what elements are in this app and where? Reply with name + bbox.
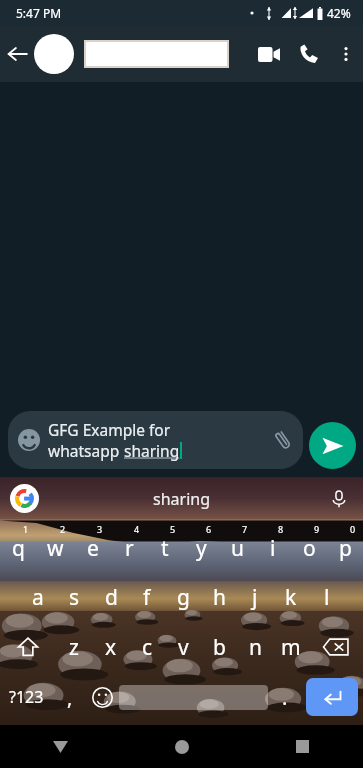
button[interactable]: h	[201, 572, 237, 622]
button[interactable]: 0	[327, 520, 363, 572]
staticText: o	[303, 534, 316, 563]
button[interactable]: j	[237, 572, 273, 622]
button[interactable]: ,	[53, 672, 86, 722]
staticText: j	[252, 583, 258, 612]
staticText: a	[32, 583, 44, 612]
staticText: 5:47 PM	[16, 5, 62, 21]
button[interactable]: 6	[183, 520, 219, 572]
button[interactable]: 3	[74, 520, 111, 572]
button[interactable]: b	[201, 622, 237, 672]
staticText: n	[249, 633, 262, 662]
staticText: f	[143, 583, 151, 612]
button[interactable]: Space	[119, 672, 268, 722]
staticText: k	[285, 583, 297, 612]
button[interactable]: Emoji	[86, 672, 119, 722]
staticText: ,	[67, 684, 73, 711]
staticText: w	[47, 534, 64, 563]
button[interactable]: a	[19, 572, 56, 622]
staticText: l	[324, 583, 330, 612]
button[interactable]: GFG Example for	[8, 411, 303, 469]
button[interactable]: More options	[329, 26, 363, 82]
button[interactable]: s	[56, 572, 93, 622]
staticText: 9	[314, 523, 320, 535]
staticText: d	[105, 583, 118, 612]
staticText: e	[87, 534, 99, 563]
button[interactable]: k	[273, 572, 309, 622]
staticText: c	[142, 633, 153, 662]
button[interactable]	[34, 26, 249, 82]
staticText: GFG Example for	[48, 419, 171, 440]
button[interactable]: n	[237, 622, 273, 672]
staticText: m	[281, 633, 301, 662]
button[interactable]: 9	[291, 520, 327, 572]
button[interactable]: 5	[147, 520, 183, 572]
button[interactable]: Home	[121, 725, 242, 768]
staticText: h	[213, 583, 226, 612]
button[interactable]: Enter	[301, 672, 363, 722]
staticText: s	[69, 583, 80, 612]
staticText: b	[213, 633, 226, 662]
staticText: .	[282, 684, 288, 711]
staticText: sharing	[153, 488, 210, 510]
staticText: 2	[60, 523, 66, 535]
button[interactable]: x	[92, 622, 129, 672]
staticText: 4	[134, 523, 140, 535]
staticText: i	[270, 534, 276, 563]
button[interactable]: v	[165, 622, 201, 672]
button[interactable]: Recents	[242, 725, 363, 768]
staticText: 0	[350, 523, 356, 535]
button[interactable]: g	[165, 572, 201, 622]
staticText: 42%	[327, 5, 351, 21]
button[interactable]: .	[268, 672, 301, 722]
button[interactable]: Send	[309, 422, 356, 469]
staticText: 3	[97, 523, 103, 535]
staticText: v	[178, 633, 189, 662]
button[interactable]: Attach	[271, 428, 295, 452]
staticText: z	[69, 633, 79, 662]
button[interactable]: z	[55, 622, 92, 672]
button[interactable]: Voice input	[327, 487, 351, 511]
button[interactable]: m	[273, 622, 309, 672]
staticText: sharing	[124, 440, 180, 461]
staticText: ?123	[9, 686, 44, 708]
staticText: whatsapp	[48, 440, 124, 461]
staticText: y	[196, 534, 207, 563]
button[interactable]: Back	[0, 725, 121, 768]
staticText: 7	[242, 523, 248, 535]
button[interactable]: Call	[289, 26, 329, 82]
button[interactable]: l	[309, 572, 345, 622]
button[interactable]: c	[129, 622, 165, 672]
staticText: 1	[23, 523, 29, 535]
staticText: 5	[170, 523, 176, 535]
button[interactable]: 8	[255, 520, 291, 572]
button[interactable]: 2	[37, 520, 74, 572]
button[interactable]: Back	[0, 26, 34, 82]
button[interactable]: Google	[10, 484, 39, 513]
staticText: r	[125, 534, 134, 563]
button[interactable]: 4	[111, 520, 147, 572]
button[interactable]: Shift	[0, 622, 55, 672]
staticText: x	[105, 633, 117, 662]
button[interactable]: 1	[0, 520, 37, 572]
button[interactable]: Video call	[249, 26, 289, 82]
staticText: 8	[278, 523, 284, 535]
staticText: u	[231, 534, 244, 563]
button[interactable]: 7	[219, 520, 255, 572]
staticText: t	[161, 534, 169, 563]
button[interactable]: d	[93, 572, 129, 622]
button[interactable]: ?123	[0, 672, 53, 722]
button[interactable]: sharing	[153, 488, 210, 510]
staticText: g	[177, 583, 190, 612]
staticText: 6	[206, 523, 212, 535]
staticText: q	[12, 534, 25, 563]
staticText: p	[339, 534, 352, 563]
button[interactable]: f	[129, 572, 165, 622]
button[interactable]: Backspace	[309, 622, 363, 672]
